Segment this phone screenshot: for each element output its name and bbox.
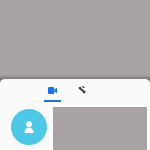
button[interactable]: Phone call — [71, 86, 93, 94]
button[interactable]: Video call — [39, 86, 65, 102]
button[interactable]: Contact avatar — [11, 109, 47, 145]
